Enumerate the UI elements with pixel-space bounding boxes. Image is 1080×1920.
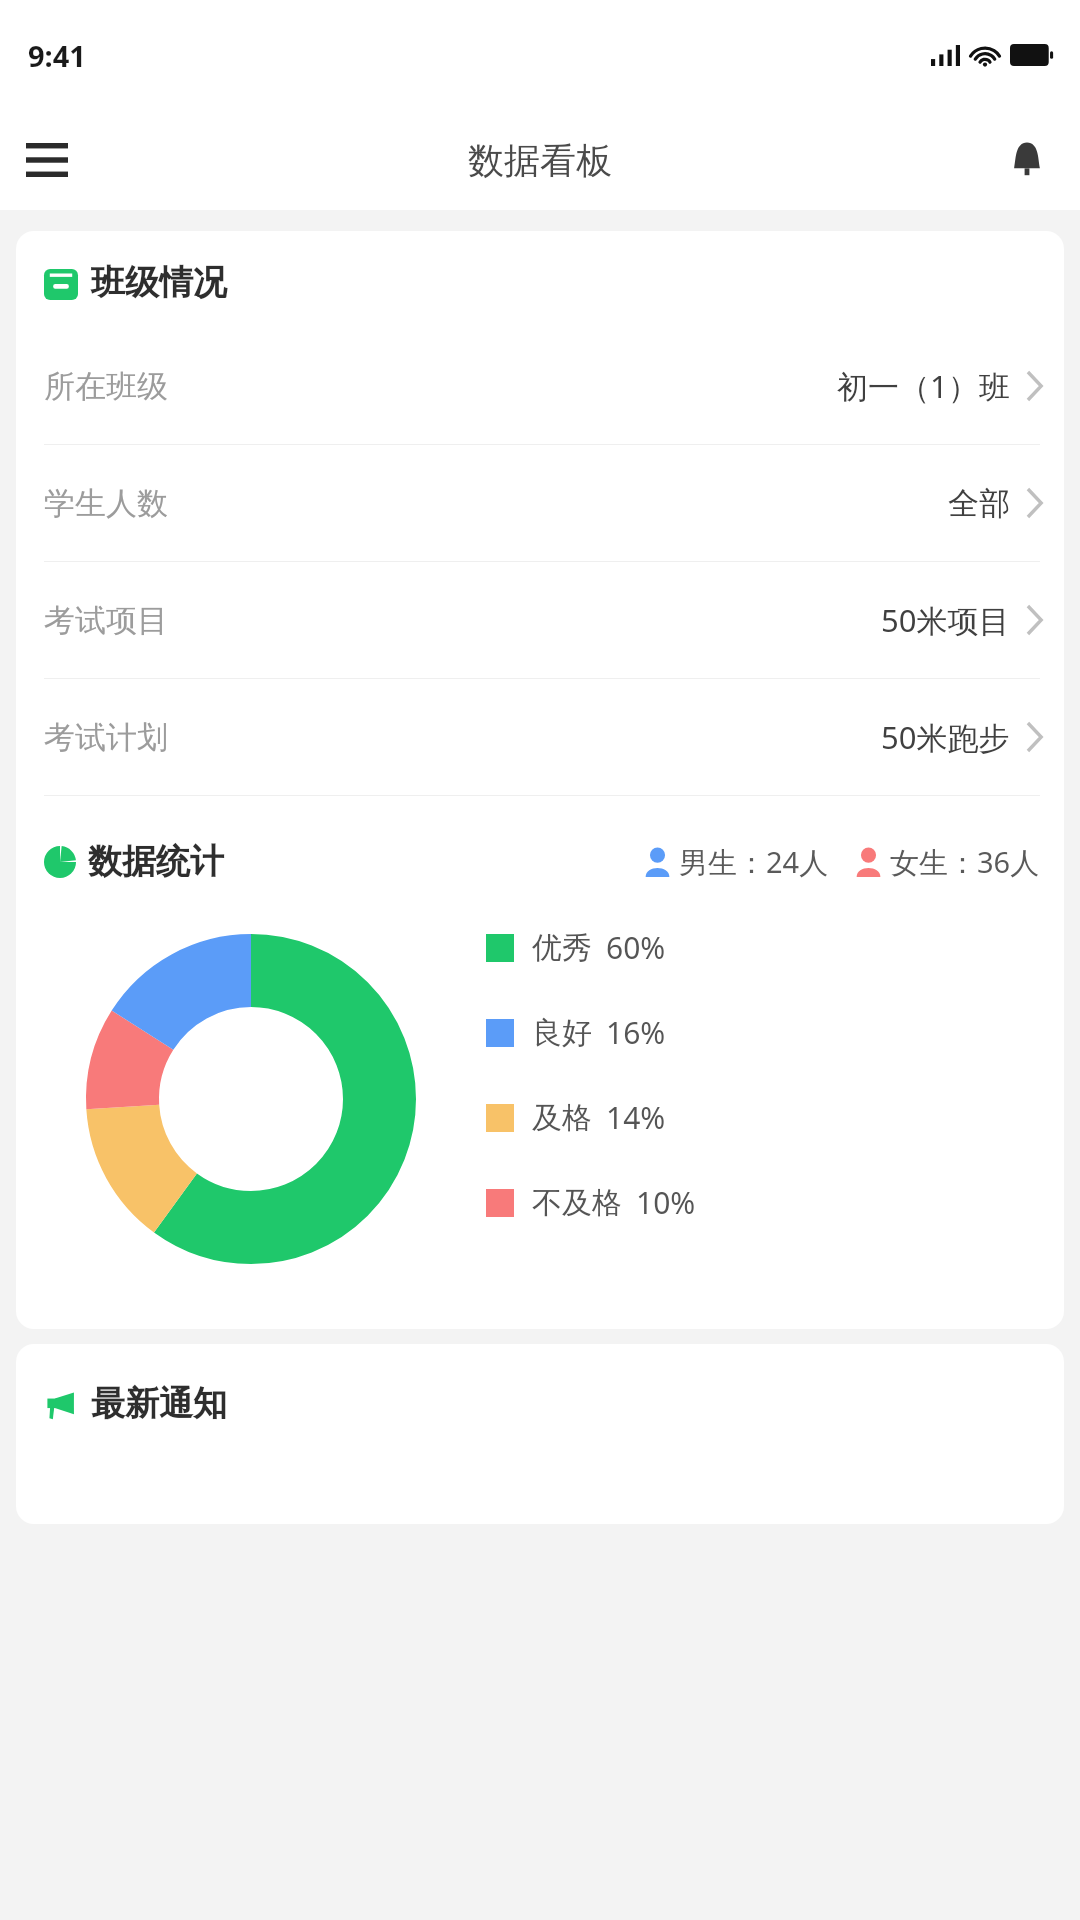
staticText: 男生：24人 [679,842,829,882]
staticText: 50米跑步 [881,716,1010,758]
staticText: 所在班级 [44,367,168,406]
button[interactable]: 考试计划 [16,679,1064,795]
staticText: 考试计划 [44,718,168,757]
staticText: 考试项目 [44,601,168,640]
staticText: 初一（1）班 [837,365,1010,407]
staticText: 及格 [532,1099,592,1137]
staticText: 16% [606,1012,666,1053]
staticText: 60% [606,927,666,968]
staticText: 女生：36人 [890,842,1040,882]
staticText: 班级情况 [91,261,227,304]
button[interactable]: Menu [16,129,78,191]
staticText: 14% [606,1097,666,1138]
staticText: 学生人数 [44,484,168,523]
staticText: 10% [636,1182,696,1223]
button[interactable]: 学生人数 [16,445,1064,561]
staticText: 最新通知 [91,1382,227,1425]
staticText: 数据统计 [88,840,224,883]
staticText: 数据看板 [468,138,612,183]
staticText: 优秀 [532,929,592,967]
staticText: 不及格 [532,1184,622,1222]
button[interactable]: Notifications [996,129,1058,191]
button[interactable]: 考试项目 [16,562,1064,678]
staticText: 全部 [948,484,1010,523]
staticText: 良好 [532,1014,592,1052]
staticText: 50米项目 [881,599,1010,641]
button[interactable]: 所在班级 [16,328,1064,444]
staticText: 9:41 [28,36,86,75]
